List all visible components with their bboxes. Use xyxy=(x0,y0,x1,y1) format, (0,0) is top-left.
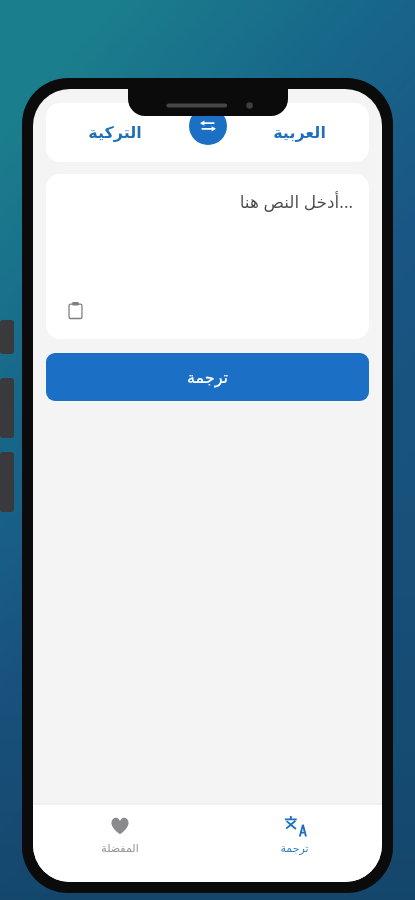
button[interactable]: ترجمة xyxy=(207,804,382,866)
staticText: ترجمة xyxy=(280,842,309,855)
staticText: أدخل النص هنا... xyxy=(239,190,353,213)
staticText: المفضلة xyxy=(101,842,139,855)
staticText: ترجمة xyxy=(187,368,228,387)
button[interactable]: ترجمة xyxy=(46,353,369,401)
button[interactable]: العربية xyxy=(230,103,369,162)
button[interactable]: التركية xyxy=(46,103,184,162)
button[interactable]: المفضلة xyxy=(33,804,207,866)
staticText: التركية xyxy=(88,123,142,142)
button[interactable]: أدخل النص هنا... xyxy=(46,174,369,339)
button[interactable]: Swap languages xyxy=(189,107,227,145)
staticText: العربية xyxy=(273,123,326,142)
button[interactable]: Paste from clipboard xyxy=(60,295,90,325)
